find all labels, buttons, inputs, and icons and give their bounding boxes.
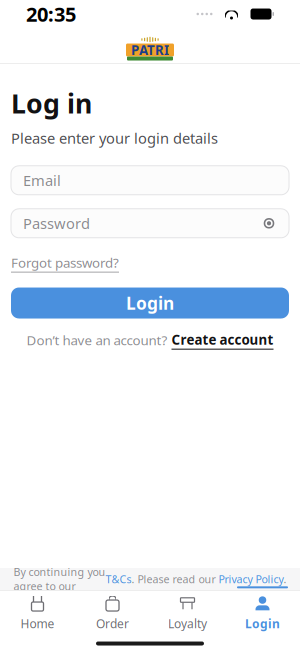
staticText: Login — [126, 291, 174, 315]
staticText: PATRI — [131, 41, 169, 59]
button[interactable]: Login — [225, 591, 300, 635]
staticText: Don’t have an account? — [26, 331, 167, 349]
button[interactable]: Order — [75, 591, 150, 635]
staticText: Home — [20, 615, 54, 631]
button[interactable]: Privacy Policy — [218, 572, 283, 586]
button[interactable]: Create account — [171, 330, 273, 350]
button[interactable]: Forgot password? — [11, 254, 119, 272]
staticText: Login — [245, 615, 280, 632]
staticText: Please enter your login details — [11, 128, 218, 148]
staticText: Password — [23, 214, 90, 233]
staticText: Forgot password? — [11, 254, 119, 271]
button[interactable]: Show password — [261, 215, 277, 231]
button[interactable]: Login — [11, 287, 289, 318]
button[interactable]: T&Cs — [105, 572, 131, 586]
staticText: Log in — [11, 85, 92, 121]
staticText: . — [283, 572, 286, 586]
staticText: 20:35 — [26, 0, 76, 28]
staticText: By continuing you agree to our — [13, 565, 105, 593]
staticText: Privacy Policy — [218, 572, 283, 586]
staticText: Email — [23, 171, 61, 190]
staticText: T&Cs — [105, 572, 131, 586]
button[interactable]: Home — [0, 591, 75, 635]
staticText: Loyalty — [168, 615, 207, 631]
staticText: Order — [96, 615, 129, 631]
staticText: . Please read our — [131, 572, 218, 586]
button[interactable]: Loyalty — [150, 591, 225, 635]
staticText: Create account — [171, 330, 273, 349]
